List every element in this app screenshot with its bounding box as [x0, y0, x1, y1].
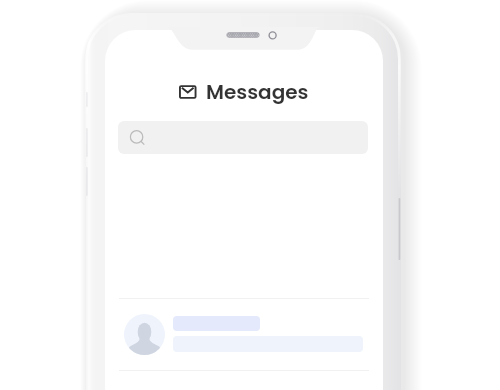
- button[interactable]: Search messages: [118, 121, 368, 154]
- button[interactable]: [105, 299, 383, 369]
- staticText: Messages: [206, 78, 309, 106]
